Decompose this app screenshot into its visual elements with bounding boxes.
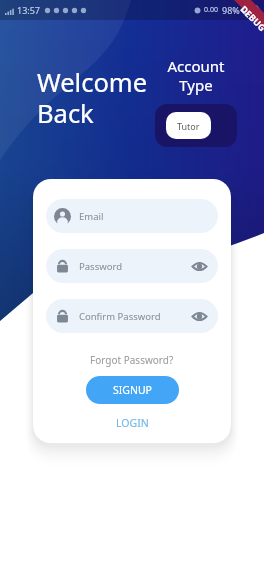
staticText: Forgot Password?	[90, 353, 174, 367]
staticText: Password	[79, 260, 122, 273]
button[interactable]: Toggle password visibility	[185, 252, 213, 280]
staticText: SIGNUP	[113, 383, 152, 397]
staticText: 13:57	[17, 4, 41, 16]
button[interactable]: Toggle password visibility	[185, 302, 213, 330]
button[interactable]: Forgot Password?	[88, 351, 176, 369]
button[interactable]: LOGIN	[114, 414, 151, 432]
staticText: Account Type	[167, 56, 225, 95]
staticText: DEBUG	[238, 3, 264, 33]
button[interactable]: Tutor	[155, 104, 237, 147]
staticText: Email	[79, 210, 104, 223]
staticText: 0.00	[204, 5, 218, 15]
staticText: Welcome Back	[37, 65, 148, 131]
staticText: 98%	[222, 4, 240, 16]
button[interactable]: Password	[46, 249, 218, 283]
staticText: LOGIN	[116, 416, 149, 430]
staticText: Confirm Password	[79, 310, 161, 323]
staticText: Tutor	[177, 120, 200, 132]
button[interactable]: SIGNUP	[86, 376, 179, 404]
button[interactable]: Confirm Password	[46, 299, 218, 333]
button[interactable]: Email	[46, 199, 218, 233]
